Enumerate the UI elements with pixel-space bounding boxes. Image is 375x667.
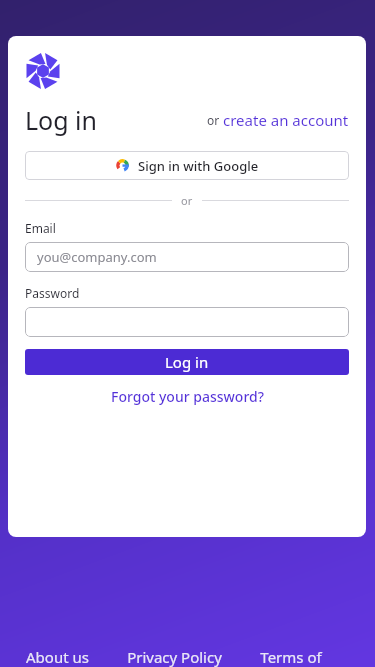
button[interactable] <box>25 307 349 337</box>
button[interactable]: create an account <box>223 110 349 130</box>
staticText: Privacy Policy <box>127 647 222 667</box>
button[interactable]: Terms of <box>260 647 322 667</box>
staticText: Email <box>25 220 56 236</box>
staticText: About us <box>26 647 89 667</box>
staticText: Sign in with Google <box>138 157 259 175</box>
staticText: you@company.com <box>37 248 157 266</box>
staticText: Log in <box>25 103 98 137</box>
button[interactable]: Privacy Policy <box>127 647 222 667</box>
button[interactable]: Forgot your password? <box>111 385 264 408</box>
staticText: Terms of <box>260 647 322 667</box>
staticText: create an account <box>223 110 349 130</box>
button[interactable]: Sign in with Google <box>25 151 349 180</box>
staticText: Forgot your password? <box>111 387 264 406</box>
button[interactable]: you@company.com <box>25 242 349 272</box>
button[interactable]: About us <box>26 647 89 667</box>
staticText: or <box>207 112 223 128</box>
staticText: Log in <box>165 352 209 372</box>
button[interactable]: Log in <box>25 349 349 375</box>
staticText: Password <box>25 285 80 301</box>
staticText: or <box>181 193 193 208</box>
